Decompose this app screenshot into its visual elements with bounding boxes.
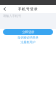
staticText: 注册新用户 <box>20 40 35 44</box>
staticText: 手机号登录 <box>18 7 38 11</box>
button[interactable]: Back <box>0 5 9 13</box>
button[interactable]: 短信验证码登录 <box>0 36 56 40</box>
staticText: 短信验证码登录 <box>17 36 38 40</box>
staticText: 立即登录 <box>22 30 34 34</box>
staticText: 请输入手机号 <box>3 14 21 18</box>
button[interactable]: 注册新用户 <box>0 40 56 44</box>
button[interactable]: 立即登录 <box>3 29 53 35</box>
